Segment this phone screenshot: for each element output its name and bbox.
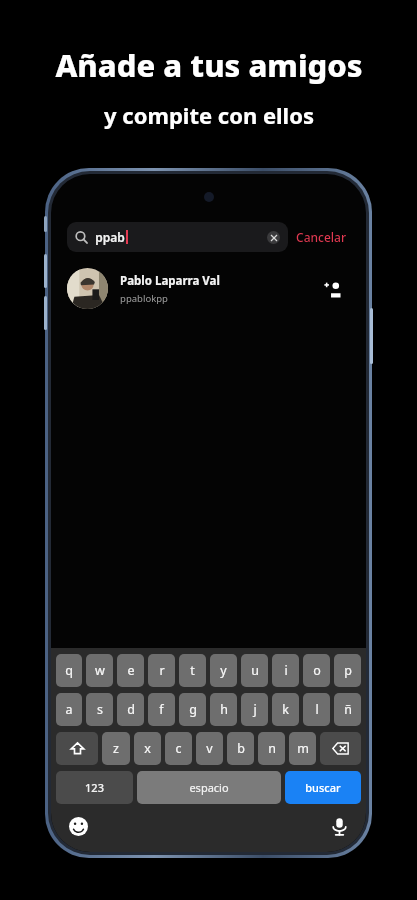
staticText: Añade a tus amigos bbox=[55, 44, 363, 86]
staticText: espacio bbox=[189, 780, 229, 795]
button[interactable]: Backspace bbox=[320, 732, 361, 765]
staticText: y compite con ellos bbox=[104, 100, 314, 130]
staticText: i bbox=[284, 662, 288, 679]
staticText: ñ bbox=[344, 701, 352, 718]
staticText: ppablokpp bbox=[120, 292, 168, 305]
button[interactable]: t bbox=[179, 654, 206, 687]
staticText: v bbox=[206, 740, 213, 757]
staticText: y bbox=[220, 662, 227, 679]
staticText: u bbox=[251, 662, 259, 679]
staticText: t bbox=[190, 662, 195, 679]
button[interactable]: s bbox=[86, 693, 113, 726]
staticText: p bbox=[344, 662, 352, 679]
button[interactable]: o bbox=[303, 654, 330, 687]
button[interactable]: z bbox=[102, 732, 130, 765]
button[interactable]: c bbox=[165, 732, 192, 765]
button[interactable]: f bbox=[148, 693, 175, 726]
button[interactable]: n bbox=[258, 732, 285, 765]
button[interactable]: p bbox=[334, 654, 361, 687]
staticText: j bbox=[253, 701, 257, 718]
button[interactable]: d bbox=[117, 693, 144, 726]
button[interactable]: Emoji bbox=[64, 812, 92, 840]
staticText: g bbox=[189, 701, 197, 718]
button[interactable]: 123 bbox=[56, 771, 133, 804]
staticText: o bbox=[313, 662, 321, 679]
staticText: buscar bbox=[305, 780, 341, 795]
staticText: a bbox=[65, 701, 73, 718]
staticText: k bbox=[282, 701, 289, 718]
button[interactable]: e bbox=[117, 654, 144, 687]
button[interactable]: ñ bbox=[334, 693, 361, 726]
staticText: x bbox=[144, 740, 151, 757]
staticText: l bbox=[315, 701, 319, 718]
button[interactable]: ppab bbox=[67, 222, 288, 252]
button[interactable]: l bbox=[303, 693, 330, 726]
button[interactable]: g bbox=[179, 693, 206, 726]
staticText: b bbox=[237, 740, 245, 757]
staticText: h bbox=[220, 701, 228, 718]
button[interactable]: Voice input bbox=[325, 812, 353, 840]
button[interactable]: espacio bbox=[137, 771, 281, 804]
staticText: c bbox=[175, 740, 182, 757]
staticText: f bbox=[159, 701, 164, 718]
staticText: d bbox=[127, 701, 135, 718]
staticText: e bbox=[127, 662, 135, 679]
staticText: z bbox=[113, 740, 119, 757]
staticText: s bbox=[97, 701, 103, 718]
staticText: 123 bbox=[85, 780, 104, 795]
button[interactable]: buscar bbox=[285, 771, 361, 804]
button[interactable]: y bbox=[210, 654, 237, 687]
button[interactable]: q bbox=[56, 654, 82, 687]
button[interactable]: b bbox=[227, 732, 254, 765]
button[interactable]: x bbox=[134, 732, 161, 765]
button[interactable]: j bbox=[241, 693, 268, 726]
staticText: Pablo Laparra Val bbox=[120, 273, 220, 289]
button[interactable]: Cancelar bbox=[288, 225, 354, 249]
staticText: n bbox=[268, 740, 276, 757]
button[interactable]: h bbox=[210, 693, 237, 726]
button[interactable]: a bbox=[56, 693, 82, 726]
staticText: ppab bbox=[95, 229, 125, 245]
button[interactable]: Shift bbox=[56, 732, 98, 765]
button[interactable]: i bbox=[272, 654, 299, 687]
staticText: Cancelar bbox=[296, 229, 346, 245]
staticText: w bbox=[95, 662, 105, 679]
button[interactable]: k bbox=[272, 693, 299, 726]
button[interactable]: Clear text bbox=[267, 231, 280, 244]
button[interactable]: w bbox=[86, 654, 113, 687]
button[interactable]: m bbox=[289, 732, 316, 765]
staticText: m bbox=[297, 740, 309, 757]
button[interactable]: u bbox=[241, 654, 268, 687]
button[interactable]: Pablo Laparra Val bbox=[51, 264, 366, 313]
button[interactable]: r bbox=[148, 654, 175, 687]
button[interactable]: v bbox=[196, 732, 223, 765]
button[interactable]: Add friend bbox=[318, 274, 348, 304]
staticText: q bbox=[65, 662, 73, 679]
staticText: r bbox=[159, 662, 165, 679]
